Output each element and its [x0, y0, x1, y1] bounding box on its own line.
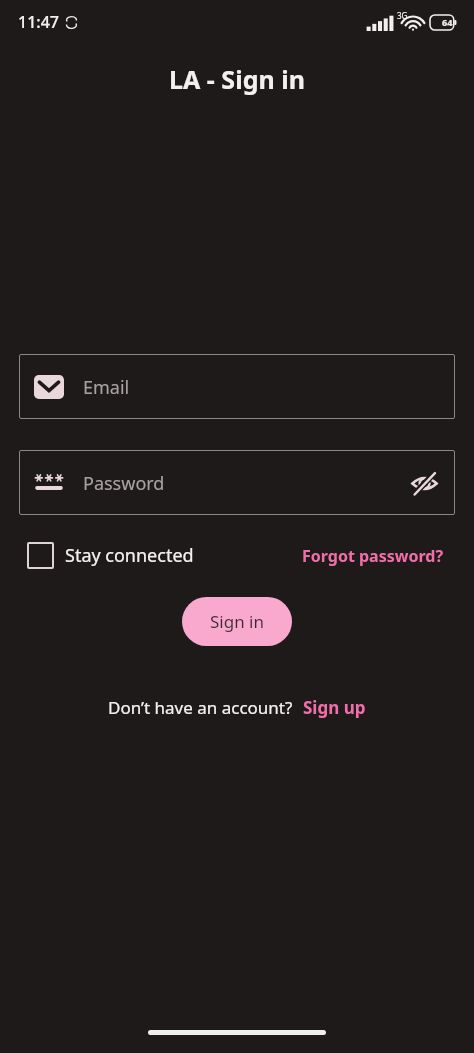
staticText: Stay connected: [65, 543, 194, 568]
staticText: 11:47: [18, 11, 59, 33]
staticText: 3G: [397, 10, 408, 21]
staticText: Forgot password?: [302, 545, 444, 567]
staticText: LA - Sign in: [0, 62, 474, 96]
staticText: Password: [83, 471, 165, 496]
button[interactable]: Email: [19, 354, 455, 419]
button[interactable]: Show password: [407, 466, 441, 500]
staticText: 64: [442, 16, 453, 28]
staticText: Sign up: [303, 696, 366, 719]
staticText: Sign in: [210, 610, 264, 633]
button[interactable]: Sign up: [303, 696, 366, 719]
button[interactable]: Sign in: [182, 597, 292, 646]
button[interactable]: Forgot password?: [302, 545, 444, 567]
staticText: Email: [83, 375, 130, 400]
button[interactable]: Stay connected: [27, 542, 194, 569]
button[interactable]: Password: [19, 450, 455, 515]
staticText: Don’t have an account?: [108, 696, 293, 719]
